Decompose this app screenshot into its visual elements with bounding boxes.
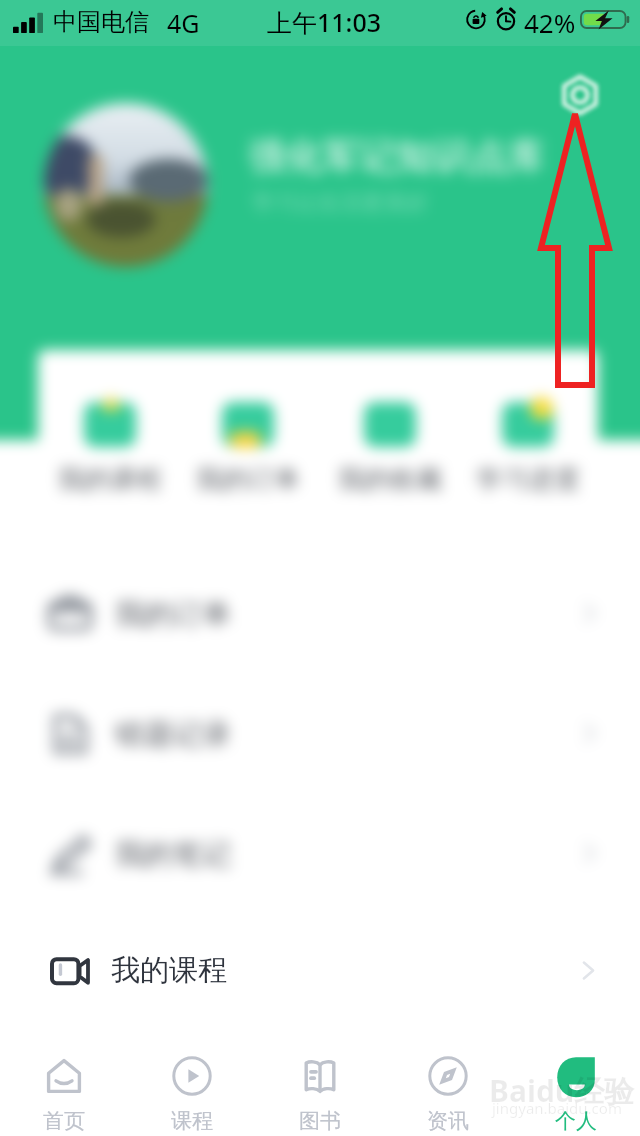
staticText: 学习进度	[476, 463, 580, 496]
button[interactable]: 学习进度	[468, 350, 588, 536]
staticText: 我的订单	[196, 463, 300, 496]
button[interactable]: 我的课程	[50, 350, 170, 536]
staticText: 中国电信	[53, 7, 149, 37]
staticText: 图书	[299, 1108, 341, 1134]
button[interactable]: 我的课程	[0, 916, 640, 1024]
staticText: Baidu经验	[489, 1070, 635, 1111]
staticText: 我的课程	[58, 463, 162, 496]
staticText: jingyan.baidu.com	[492, 1098, 622, 1118]
staticText: 4G	[167, 6, 200, 40]
staticText: 课程	[171, 1108, 213, 1134]
button[interactable]: 错题记录	[0, 676, 640, 796]
staticText: 学习让生活更美好	[252, 189, 428, 217]
staticText: 首页	[43, 1108, 85, 1134]
staticText: 我的课程	[111, 952, 227, 989]
button[interactable]: 我的订单	[188, 350, 308, 536]
button[interactable]: 我的收藏	[330, 350, 450, 536]
staticText: 我的订单	[115, 596, 231, 633]
staticText: 资讯	[427, 1108, 469, 1134]
button[interactable]: 资讯	[384, 1024, 512, 1136]
button[interactable]: Settings	[561, 76, 599, 114]
staticText: 我的笔记	[115, 836, 231, 873]
button[interactable]: 我的订单	[0, 556, 640, 676]
staticText: 强化军记知识点库	[249, 133, 545, 180]
button[interactable]: 个人	[512, 1024, 640, 1136]
button[interactable]: 课程	[128, 1024, 256, 1136]
staticText: 错题记录	[115, 716, 231, 753]
button[interactable]: 我的笔记	[0, 796, 640, 916]
staticText: 个人	[555, 1108, 597, 1134]
staticText: 上午11:03	[267, 5, 382, 39]
button[interactable]: 图书	[256, 1024, 384, 1136]
staticText: 42%	[524, 5, 576, 40]
staticText: 我的收藏	[338, 463, 442, 496]
button[interactable]: 首页	[0, 1024, 128, 1136]
